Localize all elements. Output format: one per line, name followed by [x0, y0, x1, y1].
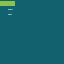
- staticText: abcl: [8, 7, 13, 10]
- button[interactable]: abc: [0, 11, 64, 16]
- staticText: abc: [8, 12, 12, 15]
- button[interactable]: abcl: [0, 6, 64, 11]
